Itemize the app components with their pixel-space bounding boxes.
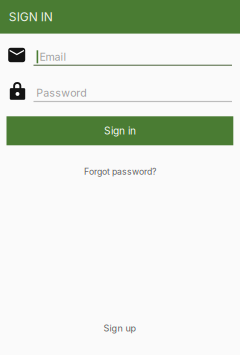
button[interactable]: Sign in	[6, 116, 233, 145]
button[interactable]: Sign up	[0, 320, 240, 336]
staticText: Email	[39, 50, 66, 63]
staticText: Password	[36, 86, 87, 99]
staticText: Sign in	[104, 125, 136, 137]
button[interactable]: Password	[0, 82, 240, 104]
staticText: SIGN IN	[9, 9, 53, 24]
button[interactable]: Forgot password?	[0, 164, 240, 180]
button[interactable]: Email	[0, 48, 240, 70]
staticText: Sign up	[103, 323, 136, 334]
staticText: Forgot password?	[84, 166, 156, 177]
